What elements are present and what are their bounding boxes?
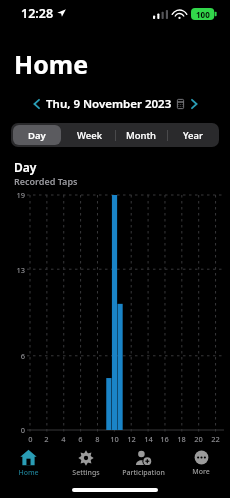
staticText: 0 <box>28 434 33 444</box>
button[interactable]: Thu, 9 November 2023 <box>46 94 184 114</box>
staticText: 2 <box>44 434 49 444</box>
staticText: Home <box>18 468 39 478</box>
staticText: More <box>192 467 210 477</box>
staticText: 6 <box>20 351 25 361</box>
button[interactable]: Week <box>63 123 115 147</box>
staticText: Month <box>126 129 157 142</box>
button[interactable]: Participation <box>114 445 172 482</box>
staticText: Day <box>28 129 46 142</box>
staticText: 12:28 <box>21 5 54 22</box>
staticText: 8 <box>95 434 100 444</box>
staticText: 100 <box>196 9 210 20</box>
staticText: 12 <box>127 434 136 444</box>
staticText: Week <box>77 129 102 142</box>
staticText: 16 <box>160 434 169 444</box>
staticText: Home <box>14 47 89 81</box>
staticText: 0 <box>20 425 25 435</box>
button[interactable]: Settings <box>57 445 114 482</box>
staticText: Year <box>183 129 203 142</box>
staticText: Thu, 9 November 2023 <box>46 96 172 112</box>
staticText: Participation <box>122 468 165 478</box>
staticText: 10 <box>110 434 119 444</box>
staticText: Settings <box>72 468 100 478</box>
staticText: 6 <box>78 434 83 444</box>
staticText: 14 <box>144 434 153 444</box>
button[interactable]: Year <box>167 123 219 147</box>
button[interactable]: Previous day <box>26 94 46 114</box>
staticText: 18 <box>177 434 186 444</box>
staticText: 22 <box>211 434 220 444</box>
button[interactable]: Next day <box>184 94 204 114</box>
staticText: Recorded Taps <box>14 175 78 187</box>
staticText: Day <box>14 159 37 175</box>
button[interactable]: More <box>172 445 230 482</box>
staticText: 20 <box>194 434 203 444</box>
button[interactable]: Home <box>0 445 57 482</box>
button[interactable]: Day <box>11 123 63 147</box>
button[interactable]: Month <box>115 123 167 147</box>
staticText: 13 <box>16 265 25 275</box>
staticText: 4 <box>61 434 66 444</box>
staticText: 19 <box>16 190 25 200</box>
